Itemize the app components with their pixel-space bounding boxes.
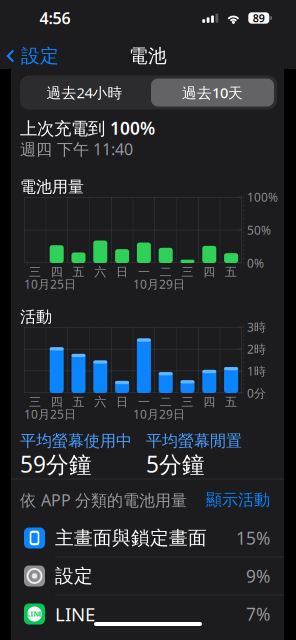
staticText: 一 bbox=[138, 265, 150, 279]
staticText: 10月29日 bbox=[133, 406, 185, 422]
staticText: 主畫面與鎖定畫面 bbox=[55, 526, 207, 549]
staticText: 59分鐘 bbox=[20, 449, 92, 479]
button[interactable]: 設定 bbox=[0, 39, 65, 72]
staticText: 六 bbox=[94, 265, 106, 279]
staticText: 四 bbox=[203, 395, 215, 409]
staticText: 平均螢幕使用中 bbox=[20, 431, 132, 451]
staticText: 89 bbox=[253, 11, 265, 25]
staticText: 15% bbox=[236, 526, 270, 549]
staticText: LINE bbox=[26, 610, 42, 618]
staticText: 依 APP 分類的電池用量 bbox=[20, 489, 187, 511]
staticText: 10月25日 bbox=[24, 276, 76, 292]
staticText: 0分 bbox=[247, 385, 266, 401]
staticText: 三 bbox=[181, 395, 193, 409]
staticText: 過去10天 bbox=[182, 83, 243, 102]
staticText: 100% bbox=[247, 189, 278, 205]
button[interactable]: 主畫面與鎖定畫面 bbox=[11, 519, 284, 557]
staticText: LINE bbox=[55, 602, 95, 626]
staticText: 五 bbox=[225, 265, 237, 279]
staticText: 10月25日 bbox=[24, 406, 76, 422]
staticText: 上次充電到 100% bbox=[20, 116, 155, 139]
staticText: 日 bbox=[116, 395, 128, 409]
staticText: 電池用量 bbox=[20, 177, 84, 197]
staticText: 四 bbox=[51, 395, 63, 409]
staticText: 7% bbox=[246, 602, 270, 625]
staticText: 一 bbox=[138, 395, 150, 409]
button[interactable]: 顯示活動 bbox=[0, 0, 296, 640]
staticText: 電池 bbox=[129, 44, 167, 67]
staticText: 三 bbox=[29, 265, 41, 279]
staticText: 1時 bbox=[247, 363, 266, 379]
button[interactable]: LINE bbox=[11, 595, 284, 633]
staticText: 五 bbox=[72, 265, 84, 279]
staticText: 五 bbox=[72, 395, 84, 409]
staticText: 5分鐘 bbox=[146, 449, 205, 479]
staticText: 顯示活動 bbox=[206, 490, 270, 510]
staticText: 2時 bbox=[247, 341, 266, 357]
staticText: 10月29日 bbox=[133, 276, 185, 292]
staticText: 過去24小時 bbox=[46, 83, 122, 102]
staticText: 四 bbox=[203, 265, 215, 279]
staticText: 日 bbox=[116, 265, 128, 279]
staticText: 五 bbox=[225, 395, 237, 409]
staticText: 週四 下午 11:40 bbox=[20, 138, 133, 160]
staticText: 設定 bbox=[21, 44, 59, 67]
staticText: 六 bbox=[94, 395, 106, 409]
staticText: 三 bbox=[181, 265, 193, 279]
staticText: 平均螢幕閒置 bbox=[146, 431, 242, 451]
staticText: 活動 bbox=[20, 307, 52, 327]
staticText: 9% bbox=[246, 564, 270, 587]
staticText: 3時 bbox=[247, 319, 266, 335]
button[interactable]: 過去24小時 bbox=[23, 78, 146, 106]
staticText: 三 bbox=[29, 395, 41, 409]
staticText: 四 bbox=[51, 265, 63, 279]
staticText: 二 bbox=[160, 395, 172, 409]
staticText: 設定 bbox=[55, 564, 93, 587]
button[interactable]: 設定 bbox=[11, 557, 284, 595]
staticText: 50% bbox=[247, 222, 271, 238]
staticText: 二 bbox=[160, 265, 172, 279]
button[interactable]: 過去10天 bbox=[151, 78, 274, 106]
staticText: 0% bbox=[247, 255, 264, 271]
staticText: 4:56 bbox=[39, 7, 70, 29]
